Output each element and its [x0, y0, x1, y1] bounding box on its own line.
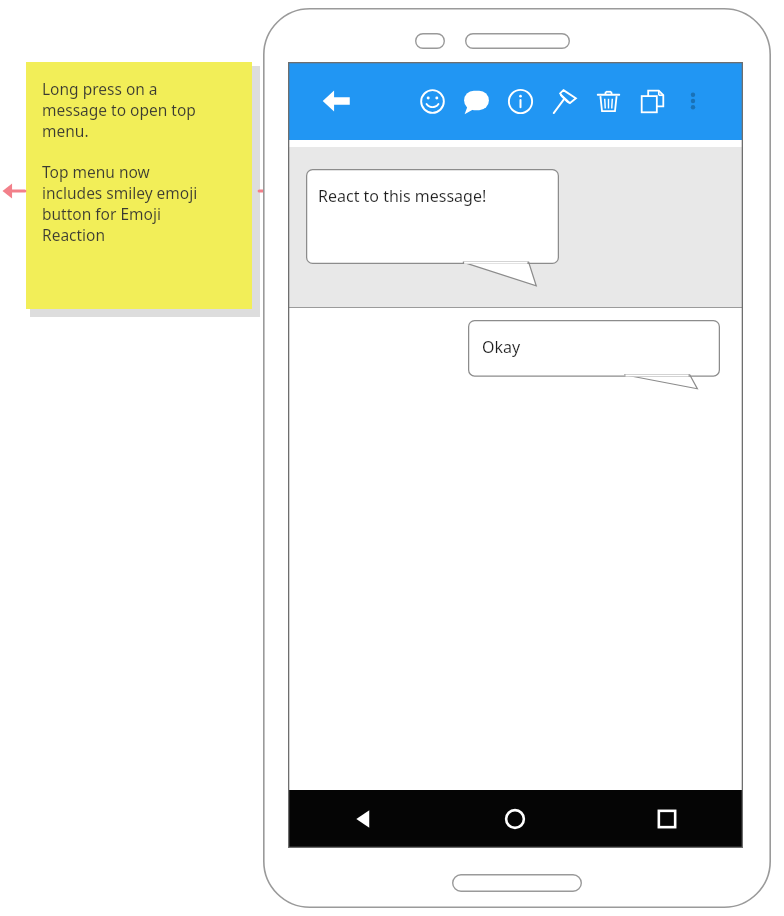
staticText: menu. — [42, 120, 89, 141]
button[interactable]: Reply — [458, 62, 494, 140]
staticText: Top menu now — [42, 161, 150, 182]
staticText: React to this message! — [318, 185, 487, 207]
button[interactable]: More options — [674, 62, 712, 140]
button[interactable]: React to this message! — [288, 147, 743, 307]
button[interactable]: Back — [288, 790, 439, 848]
staticText: button for Emoji — [42, 203, 161, 224]
staticText: includes smiley emoji — [42, 182, 198, 203]
button[interactable]: Copy — [634, 62, 670, 140]
button[interactable]: Pin — [546, 62, 582, 140]
button[interactable]: Home — [439, 790, 591, 848]
button[interactable]: Delete — [590, 62, 626, 140]
button[interactable]: Message info — [502, 62, 538, 140]
button[interactable]: Back — [308, 62, 364, 140]
staticText: message to open top — [42, 99, 196, 120]
button[interactable]: Emoji reaction — [414, 62, 450, 140]
staticText: Okay — [482, 336, 521, 358]
staticText: Long press on a — [42, 78, 158, 99]
staticText: Reaction — [42, 224, 106, 245]
button[interactable]: Recent apps — [591, 790, 743, 848]
